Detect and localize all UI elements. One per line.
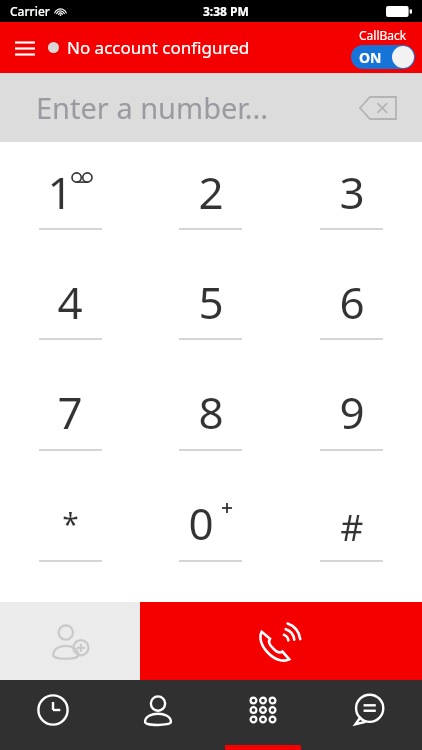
staticText: 2 — [198, 162, 224, 222]
staticText: 4 — [57, 272, 83, 332]
button[interactable]: 5 — [140, 264, 281, 374]
staticText: 7 — [57, 382, 83, 442]
button[interactable]: Recents — [0, 680, 105, 750]
button[interactable]: 9 — [281, 374, 422, 485]
button[interactable]: CallBack toggle — [351, 27, 415, 69]
staticText: Enter a number... — [36, 88, 269, 127]
button[interactable]: 3 — [281, 154, 422, 264]
button[interactable]: 4 — [0, 264, 140, 374]
button[interactable]: 0 — [140, 485, 281, 596]
staticText: ON — [359, 48, 382, 67]
button[interactable]: Add contact — [0, 602, 140, 680]
button[interactable]: 6 — [281, 264, 422, 374]
staticText: 1 — [47, 162, 73, 222]
staticText: 3 — [339, 162, 365, 222]
button[interactable]: * — [0, 485, 140, 596]
staticText: * — [62, 503, 79, 544]
button[interactable]: Menu — [10, 33, 40, 63]
button[interactable]: Keypad — [210, 680, 316, 750]
staticText: 9 — [339, 382, 365, 442]
staticText: CallBack — [359, 27, 407, 43]
button[interactable]: 8 — [140, 374, 281, 485]
staticText: No account configured — [67, 36, 250, 59]
staticText: 3:38 PM — [203, 3, 249, 19]
button[interactable]: Contacts — [105, 680, 210, 750]
button[interactable]: 2 — [140, 154, 281, 264]
staticText: 6 — [339, 272, 365, 332]
button[interactable]: 1 — [0, 154, 140, 264]
button[interactable]: Messages — [316, 680, 422, 750]
staticText: 5 — [198, 272, 224, 332]
staticText: # — [340, 503, 364, 552]
button[interactable]: # — [281, 485, 422, 596]
button[interactable]: Backspace — [356, 86, 400, 130]
staticText: 0 — [188, 493, 214, 553]
staticText: 8 — [198, 382, 224, 442]
button[interactable]: Call — [140, 602, 422, 680]
staticText: Carrier — [10, 3, 50, 19]
button[interactable]: 7 — [0, 374, 140, 485]
